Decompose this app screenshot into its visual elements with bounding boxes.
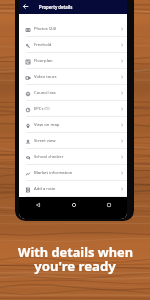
staticText: Freehold <box>34 42 52 48</box>
staticText: Add a note <box>34 186 56 192</box>
button[interactable]: Recent apps <box>102 198 115 211</box>
staticText: With details when <box>18 243 133 260</box>
staticText: Street view <box>34 138 56 144</box>
staticText: View on map <box>34 122 60 128</box>
button[interactable]: Add a note <box>19 181 127 197</box>
button[interactable]: Home <box>67 198 80 211</box>
staticText: EPCs (1) <box>34 106 50 112</box>
staticText: Video tours <box>34 74 57 80</box>
staticText: Floorplan <box>34 58 53 64</box>
button[interactable]: Photos (24) <box>19 21 127 37</box>
staticText: Market information <box>34 170 73 176</box>
button[interactable]: View on map <box>19 117 127 133</box>
button[interactable]: Video tours <box>19 69 127 85</box>
button[interactable]: Floorplan <box>19 53 127 69</box>
button[interactable]: Council tax <box>19 85 127 101</box>
button[interactable]: Back <box>31 198 44 211</box>
button[interactable]: Freehold <box>19 37 127 53</box>
staticText: Photos (24) <box>34 26 57 32</box>
button[interactable]: Market information <box>19 165 127 181</box>
staticText: Council tax <box>34 90 56 96</box>
button[interactable]: Back <box>22 3 29 10</box>
button[interactable]: School checker <box>19 149 127 165</box>
button[interactable]: EPCs (1) <box>19 101 127 117</box>
staticText: School checker <box>34 154 64 160</box>
staticText: you're ready <box>34 257 116 275</box>
staticText: Property details <box>39 4 73 10</box>
button[interactable]: Street view <box>19 133 127 149</box>
